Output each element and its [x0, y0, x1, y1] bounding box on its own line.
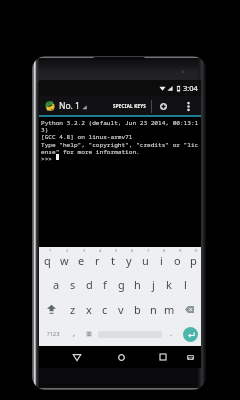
staticText: p — [190, 253, 197, 268]
button[interactable]: 8 — [153, 247, 169, 272]
button[interactable]: k — [161, 272, 177, 297]
button[interactable]: 0 — [185, 247, 201, 272]
button[interactable]: v — [113, 297, 129, 322]
button[interactable]: Backspace — [177, 297, 201, 322]
button[interactable]: f — [97, 272, 113, 297]
staticText: 2 — [66, 248, 69, 254]
staticText: Python 3.2.2 (default, Jun 23 2014, 00:1… — [41, 118, 199, 126]
button[interactable]: . — [163, 322, 179, 346]
staticText: s — [70, 277, 76, 292]
button[interactable]: g — [113, 272, 129, 297]
staticText: h — [134, 277, 141, 292]
staticText: ?123 — [47, 330, 60, 338]
button[interactable]: 4 — [89, 247, 105, 272]
staticText: [GCC 4.8] on linux-armv7l — [41, 132, 133, 140]
button[interactable]: c — [97, 297, 113, 322]
staticText: 0 — [195, 248, 198, 254]
staticText: o — [174, 253, 181, 268]
staticText: v — [118, 302, 124, 317]
staticText: n — [150, 302, 157, 317]
staticText: b — [134, 302, 141, 317]
staticText: 4 — [99, 248, 102, 254]
staticText: 3 — [83, 248, 86, 254]
button[interactable]: 9 — [169, 247, 185, 272]
button[interactable]: m — [161, 297, 177, 322]
button[interactable]: h — [129, 272, 145, 297]
button[interactable]: 3 — [73, 247, 89, 272]
button[interactable]: More options — [180, 98, 196, 114]
button[interactable]: x — [81, 297, 97, 322]
staticText: y — [126, 253, 132, 268]
staticText: 3:04 — [183, 83, 198, 93]
button[interactable]: 5 — [105, 247, 121, 272]
staticText: 5 — [115, 248, 118, 254]
button[interactable]: Recent apps — [153, 347, 173, 367]
staticText: c — [102, 302, 108, 317]
button[interactable]: Home — [111, 347, 131, 367]
staticText: Type "help", "copyright", "credits" or "… — [41, 140, 199, 148]
button[interactable]: 7 — [137, 247, 153, 272]
button[interactable]: l — [177, 272, 193, 297]
staticText: SPECIAL KEYS — [113, 103, 147, 109]
staticText: 6 — [131, 248, 134, 254]
button[interactable]: SPECIAL KEYS — [110, 100, 150, 112]
staticText: k — [166, 277, 172, 292]
button[interactable]: Change keyboard language — [80, 322, 97, 346]
button[interactable]: No. 1 — [42, 98, 90, 114]
staticText: . — [170, 327, 173, 338]
staticText: 8 — [163, 248, 166, 254]
staticText: >>> — [41, 154, 56, 162]
button[interactable]: 2 — [56, 247, 73, 272]
button[interactable]: Space — [98, 322, 162, 346]
button[interactable]: z — [64, 297, 81, 322]
button[interactable]: 6 — [121, 247, 137, 272]
staticText: x — [86, 302, 92, 317]
button[interactable]: , — [65, 322, 83, 346]
staticText: 1 — [49, 248, 52, 254]
button[interactable]: b — [129, 297, 145, 322]
staticText: a — [53, 277, 60, 292]
staticText: j — [152, 277, 155, 292]
button[interactable]: d — [81, 272, 97, 297]
staticText: No. 1 — [59, 100, 80, 112]
staticText: u — [142, 253, 149, 268]
staticText: t — [111, 253, 115, 268]
staticText: q — [44, 253, 51, 268]
staticText: f — [103, 277, 107, 292]
button[interactable]: Enter — [179, 322, 201, 346]
staticText: ense" for more information. — [41, 147, 140, 155]
button[interactable]: ?123 — [40, 322, 67, 346]
staticText: 3) — [41, 125, 49, 133]
staticText: i — [160, 253, 163, 268]
staticText: e — [78, 253, 85, 268]
button[interactable]: n — [145, 297, 161, 322]
button[interactable]: a — [48, 272, 65, 297]
button[interactable]: Back — [67, 347, 87, 367]
button[interactable]: Add session — [155, 98, 171, 114]
staticText: 9 — [179, 248, 182, 254]
button[interactable]: Hide keyboard — [181, 348, 199, 366]
staticText: g — [118, 277, 125, 292]
staticText: l — [184, 277, 187, 292]
staticText: m — [164, 302, 175, 317]
staticText: z — [70, 302, 76, 317]
staticText: r — [95, 253, 100, 268]
button[interactable]: s — [65, 272, 81, 297]
button[interactable]: j — [145, 272, 161, 297]
button[interactable]: 1 — [39, 247, 56, 272]
staticText: 7 — [147, 248, 150, 254]
staticText: d — [86, 277, 93, 292]
button[interactable]: Shift — [39, 297, 64, 322]
staticText: w — [60, 253, 69, 268]
staticText: , — [73, 327, 76, 338]
